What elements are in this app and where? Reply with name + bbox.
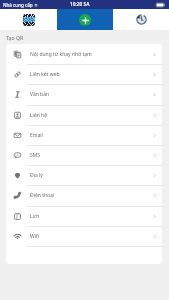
button[interactable]: Quét QR [0, 9, 57, 30]
button[interactable]: Văn bản [6, 84, 162, 104]
staticText: Điện thoại [30, 192, 55, 199]
button[interactable]: Tạo QR [57, 9, 113, 30]
staticText: Wifi [30, 233, 39, 240]
button[interactable]: Email [6, 125, 162, 145]
staticText: SMS [30, 152, 41, 159]
staticText: Nội dung từ khay nhớ tạm [30, 51, 92, 58]
button[interactable]: Điện thoại [6, 185, 162, 205]
button[interactable]: Nội dung từ khay nhớ tạm [6, 44, 162, 64]
button[interactable]: Wifi [6, 226, 162, 246]
staticText: Email [30, 132, 43, 139]
button[interactable]: SMS [6, 145, 162, 165]
staticText: Liên kết web [30, 71, 60, 78]
button[interactable]: Lịch [6, 206, 162, 226]
button[interactable]: Lịch sử [113, 9, 169, 30]
button[interactable]: Liên kết web [6, 64, 162, 84]
staticText: 10:20 SA [70, 1, 90, 8]
button[interactable]: Liên hệ [6, 105, 162, 125]
staticText: Văn bản [30, 91, 50, 98]
staticText: Địa lý [30, 172, 43, 179]
staticText: Lịch [30, 213, 40, 220]
staticText: Liên hệ [30, 112, 48, 119]
staticText: Tạo QR [6, 34, 24, 41]
staticText: Nhà cung cấp [3, 2, 33, 8]
button[interactable]: Địa lý [6, 165, 162, 185]
